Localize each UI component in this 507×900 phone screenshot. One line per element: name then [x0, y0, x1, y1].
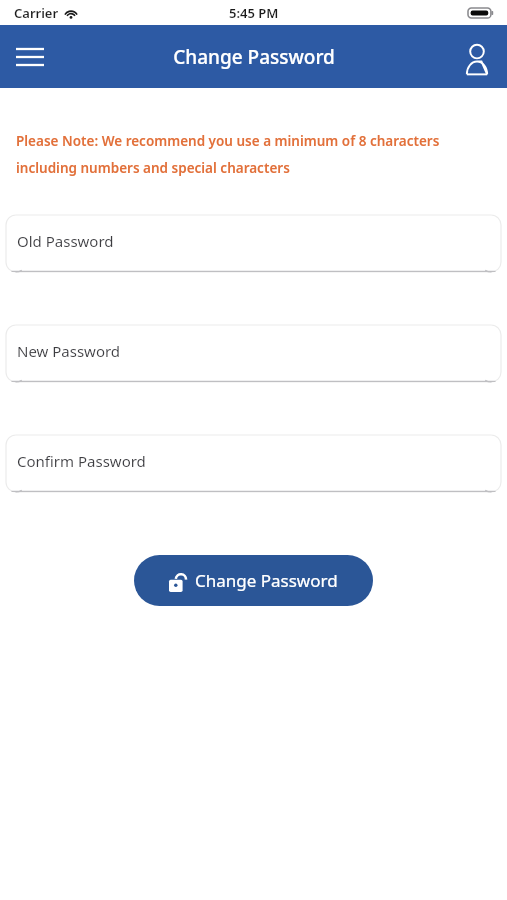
staticText: Change Password [173, 44, 335, 70]
staticText: including numbers and special characters [16, 159, 290, 177]
button[interactable]: Change Password [134, 555, 373, 606]
staticText: Please Note: We recommend you use a mini… [16, 132, 440, 150]
staticText: Old Password [17, 231, 114, 251]
staticText: Confirm Password [17, 451, 146, 471]
staticText: Change Password [195, 569, 338, 592]
button[interactable]: Open navigation menu [6, 33, 54, 81]
button[interactable]: Old Password [6, 215, 501, 272]
staticText: 5:45 PM [229, 4, 279, 22]
button[interactable]: Confirm Password [6, 435, 501, 492]
button[interactable]: New Password [6, 325, 501, 382]
staticText: Carrier [14, 4, 59, 22]
button[interactable]: Profile [453, 33, 501, 81]
staticText: New Password [17, 341, 121, 361]
